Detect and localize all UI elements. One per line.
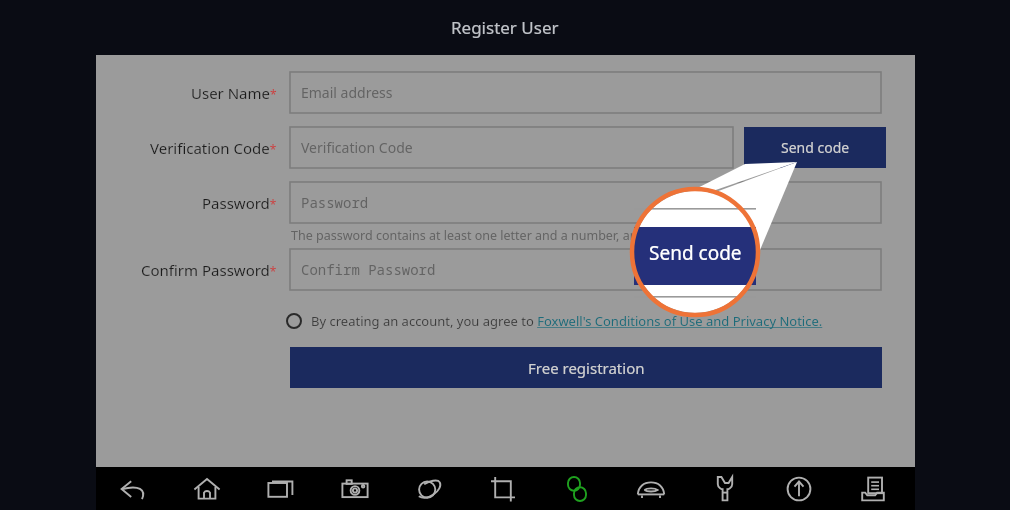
- button[interactable]: Back: [96, 467, 170, 510]
- button[interactable]: Recents: [244, 467, 318, 510]
- staticText: Register User: [451, 16, 559, 39]
- button[interactable]: Home: [170, 467, 244, 510]
- staticText: Confirm Password: [301, 260, 436, 279]
- staticText: Email address: [301, 83, 393, 102]
- button[interactable]: Confirm Password: [290, 249, 881, 290]
- button[interactable]: Email address: [290, 72, 881, 113]
- staticText: Send code: [781, 138, 850, 157]
- staticText: The password contains at least one lette…: [291, 227, 755, 244]
- button[interactable]: Free registration: [290, 347, 882, 388]
- button[interactable]: Vehicle: [614, 467, 688, 510]
- button[interactable]: Browser: [392, 467, 466, 510]
- button[interactable]: Password: [290, 182, 881, 223]
- button[interactable]: Camera: [318, 467, 392, 510]
- button[interactable]: Update: [762, 467, 836, 510]
- button[interactable]: Report: [836, 467, 910, 510]
- button[interactable]: Crop: [466, 467, 540, 510]
- staticText: Confirm Password*: [141, 260, 277, 280]
- button[interactable]: By creating an account, you agree to Fox…: [286, 308, 823, 334]
- button[interactable]: Verification Code: [290, 127, 733, 168]
- staticText: Free registration: [528, 358, 645, 378]
- button[interactable]: Tools: [688, 467, 762, 510]
- staticText: Password*: [202, 193, 277, 213]
- staticText: Verification Code: [301, 138, 413, 157]
- staticText: Send code: [649, 240, 742, 266]
- staticText: By creating an account, you agree to Fox…: [311, 312, 823, 330]
- staticText: Password: [301, 193, 369, 212]
- staticText: Verification Code*: [150, 138, 277, 158]
- button[interactable]: Send code: [744, 127, 886, 168]
- staticText: User Name*: [191, 83, 277, 103]
- button[interactable]: Link: [540, 467, 614, 510]
